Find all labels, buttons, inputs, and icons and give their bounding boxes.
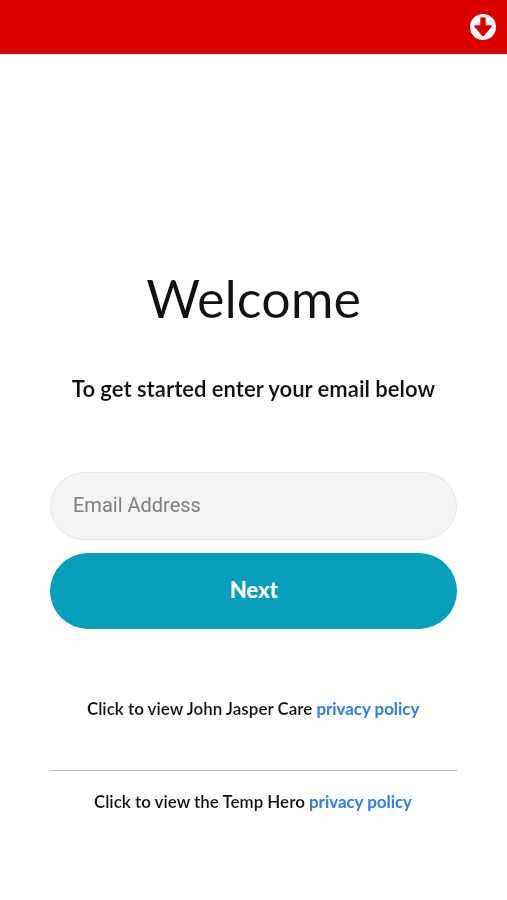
button[interactable]: Next	[50, 553, 457, 629]
button[interactable]: Email Address	[50, 472, 457, 540]
staticText: Email Address	[73, 493, 201, 516]
staticText: Welcome	[0, 267, 507, 329]
button[interactable]: Click to view the Temp Hero privacy poli…	[0, 791, 507, 811]
staticText: Click to view John Jasper Care privacy p…	[87, 698, 420, 718]
staticText: Next	[230, 576, 278, 602]
staticText: To get started enter your email below	[0, 375, 507, 401]
button[interactable]: Download	[465, 9, 501, 45]
button[interactable]: Click to view John Jasper Care privacy p…	[0, 698, 507, 718]
staticText: Click to view the Temp Hero privacy poli…	[94, 791, 413, 811]
